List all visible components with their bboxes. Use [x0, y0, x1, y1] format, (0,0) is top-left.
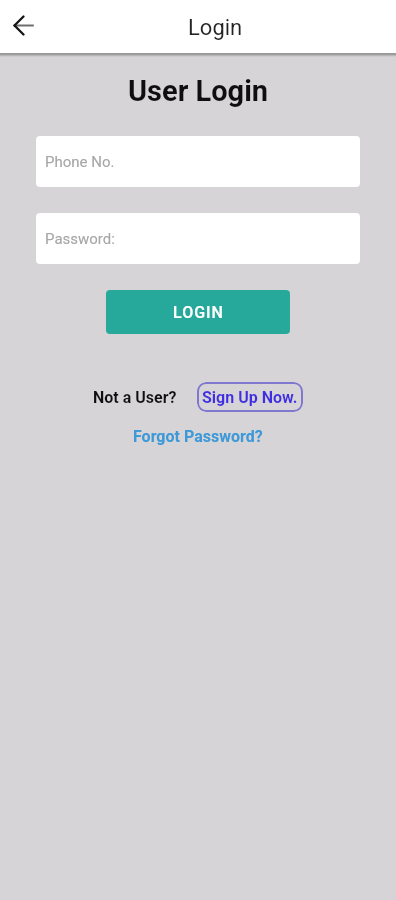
staticText: LOGIN: [173, 303, 224, 322]
button[interactable]: LOGIN: [106, 290, 290, 334]
staticText: Phone No.: [45, 153, 115, 171]
staticText: Login: [188, 15, 243, 41]
button[interactable]: Phone No.: [36, 136, 360, 187]
button[interactable]: Sign Up Now.: [197, 382, 303, 412]
button[interactable]: Password:: [36, 213, 360, 264]
staticText: Sign Up Now.: [202, 388, 298, 407]
staticText: Forgot Password?: [133, 427, 263, 446]
button[interactable]: Back: [8, 10, 38, 40]
staticText: User Login: [128, 74, 269, 108]
button[interactable]: Forgot Password?: [133, 427, 263, 446]
staticText: Password:: [45, 230, 115, 248]
staticText: Not a User?: [93, 388, 177, 407]
